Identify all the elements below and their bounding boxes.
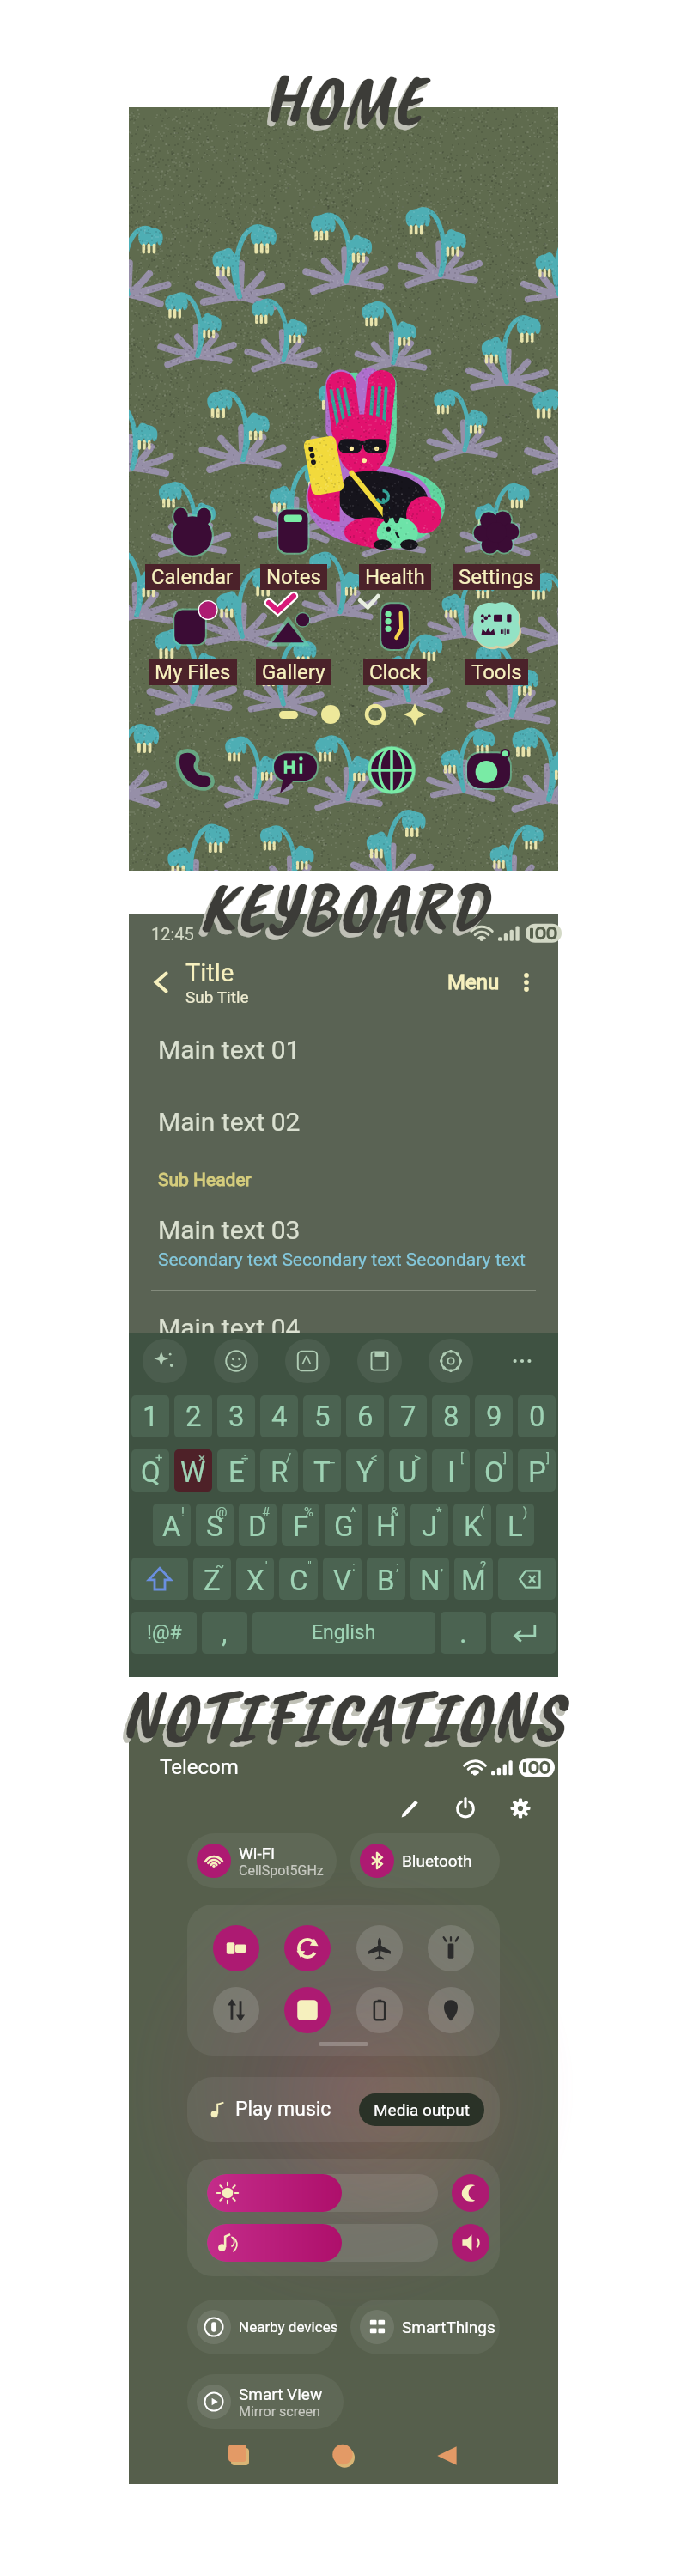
button[interactable]: Location [428, 1987, 474, 2033]
button[interactable]: Power saving [356, 1987, 403, 2033]
button[interactable]: shift [131, 1558, 188, 1600]
button[interactable]: enter [491, 1612, 556, 1654]
button[interactable]: ! [153, 1504, 191, 1546]
button[interactable]: < [346, 1449, 384, 1492]
button[interactable]: Translate [285, 1339, 330, 1383]
button[interactable]: Auto rotate [213, 1925, 259, 1971]
button[interactable]: & [368, 1504, 405, 1546]
button[interactable]: ~ [193, 1558, 231, 1600]
button[interactable]: , [410, 1558, 449, 1600]
button[interactable]: @ [196, 1504, 234, 1546]
button[interactable]: SmartThings [350, 2300, 500, 2354]
staticText: C [289, 1564, 308, 1597]
button[interactable]: Media output [359, 2093, 484, 2126]
button[interactable]: % [282, 1504, 319, 1546]
button[interactable]: del [498, 1558, 556, 1600]
staticText: A [162, 1510, 181, 1543]
button[interactable]: * [410, 1504, 448, 1546]
button[interactable]: AI [143, 1339, 187, 1383]
button[interactable]: Dark mode [452, 2174, 489, 2212]
button[interactable]: Back [144, 965, 179, 999]
button[interactable]: " [279, 1558, 318, 1600]
button[interactable]: [ [432, 1449, 470, 1492]
button[interactable]: Play music [187, 2077, 500, 2142]
button[interactable]: Sound [452, 2224, 489, 2262]
button[interactable]: Recents [221, 2437, 258, 2475]
button[interactable]: / [260, 1449, 298, 1492]
button[interactable]: ^ [325, 1504, 362, 1546]
button[interactable]: Bluetooth [350, 1833, 500, 1888]
button[interactable]: Settings [429, 1339, 473, 1383]
button[interactable]: More [500, 1339, 544, 1383]
button[interactable]: Smart View [187, 2374, 343, 2429]
button[interactable]: Hotspot [284, 1987, 331, 2033]
button[interactable]: Brightness [207, 2174, 438, 2212]
button[interactable]: Power [447, 1789, 484, 1827]
button[interactable]: Tools [448, 599, 544, 685]
staticText: # [262, 1504, 271, 1520]
button[interactable]: Volume [207, 2224, 438, 2262]
button[interactable]: Main text 04 [129, 1291, 558, 1333]
button[interactable]: Home [325, 2437, 362, 2475]
button[interactable]: Internet [364, 743, 419, 798]
button[interactable]: Wi-Fi [187, 1833, 337, 1888]
button[interactable]: ] [518, 1449, 556, 1492]
button[interactable]: Messages [268, 743, 323, 798]
button[interactable]: Airplane mode [356, 1925, 403, 1971]
button[interactable]: Mobile data [213, 1987, 259, 2033]
button[interactable]: 6 [346, 1395, 384, 1437]
button[interactable]: 8 [432, 1395, 470, 1437]
staticText: Main text 01 [158, 1035, 301, 1065]
button[interactable]: ; [367, 1558, 405, 1600]
button[interactable]: 1 [131, 1395, 169, 1437]
staticText: ; [396, 1558, 399, 1574]
button[interactable]: !@# [131, 1612, 197, 1654]
button[interactable]: 5 [303, 1395, 341, 1437]
button[interactable]: + [131, 1449, 169, 1492]
button[interactable]: : [323, 1558, 362, 1600]
button[interactable]: Settings [448, 504, 544, 590]
button[interactable]: × [174, 1449, 212, 1492]
button[interactable]: 4 [260, 1395, 298, 1437]
button[interactable]: 3 [217, 1395, 255, 1437]
button[interactable]: Camera [461, 743, 516, 798]
button[interactable]: Calendar [144, 504, 240, 590]
staticText: Bluetooth [402, 1851, 472, 1870]
button[interactable]: > [389, 1449, 427, 1492]
button[interactable]: Menu [444, 967, 503, 998]
button[interactable]: Nearby devices [187, 2300, 337, 2354]
button[interactable]: . [441, 1612, 486, 1654]
staticText: S [206, 1510, 223, 1543]
button[interactable]: Main text 01 [129, 1012, 558, 1084]
button[interactable]: Settings [502, 1789, 539, 1827]
button[interactable]: ? [454, 1558, 493, 1600]
button[interactable]: Back [429, 2437, 466, 2475]
button[interactable]: My Files [144, 599, 240, 685]
button[interactable]: ] [475, 1449, 513, 1492]
button[interactable]: Phone [171, 743, 226, 798]
button[interactable]: Clipboard [357, 1339, 402, 1383]
button[interactable]: Flashlight [428, 1925, 474, 1971]
button[interactable]: Main text 02 [129, 1084, 558, 1156]
button[interactable]: Health [347, 504, 443, 590]
button[interactable]: 9 [475, 1395, 513, 1437]
button[interactable]: More options [514, 969, 539, 995]
button[interactable]: 2 [174, 1395, 212, 1437]
button[interactable]: # [239, 1504, 277, 1546]
button[interactable]: ) [496, 1504, 534, 1546]
button[interactable]: Gallery [246, 599, 342, 685]
button[interactable]: Notes [246, 504, 342, 590]
button[interactable]: ÷ [217, 1449, 255, 1492]
button[interactable]: ( [453, 1504, 491, 1546]
button[interactable]: Sync [284, 1925, 331, 1971]
button[interactable]: Main text 03 [129, 1193, 558, 1291]
button[interactable]: ' [236, 1558, 274, 1600]
button[interactable]: _ [303, 1449, 341, 1492]
button[interactable]: Emoji [214, 1339, 258, 1383]
button[interactable]: 0 [518, 1395, 556, 1437]
button[interactable]: 7 [389, 1395, 427, 1437]
button[interactable]: English [252, 1612, 435, 1654]
button[interactable]: Edit [392, 1789, 429, 1827]
button[interactable]: Clock [347, 599, 443, 685]
button[interactable]: , [202, 1612, 247, 1654]
